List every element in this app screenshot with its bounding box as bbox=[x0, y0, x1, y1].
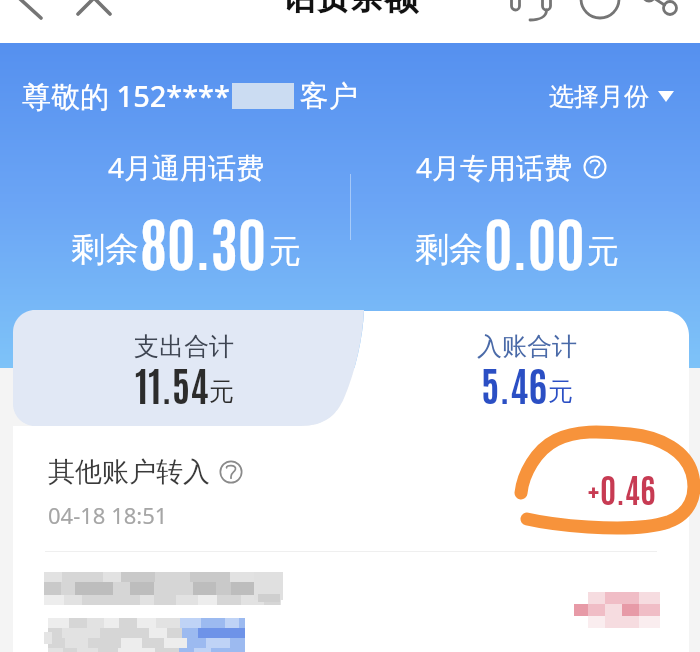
button[interactable]: 选择月份 bbox=[545, 77, 678, 116]
staticText: 尊敬的 152**** bbox=[22, 76, 230, 116]
button[interactable]: Share bbox=[637, 0, 683, 21]
button[interactable]: Help bbox=[583, 155, 607, 179]
staticText: 元 bbox=[209, 376, 234, 407]
staticText: 其他账户转入 bbox=[48, 455, 210, 489]
staticText: 剩余 bbox=[71, 228, 139, 271]
staticText: 元 bbox=[548, 376, 573, 407]
button[interactable] bbox=[365, 311, 689, 426]
staticText: 入账合计 bbox=[477, 331, 577, 362]
staticText: 支出合计 bbox=[134, 331, 234, 362]
staticText: 80.30 bbox=[140, 203, 267, 278]
button[interactable]: Close bbox=[72, 0, 118, 19]
button[interactable]: 其他账户转入 bbox=[13, 437, 689, 547]
staticText: 4月通用话费 bbox=[108, 148, 265, 186]
staticText: 选择月份 bbox=[549, 81, 649, 112]
staticText: 11.54 bbox=[135, 358, 209, 410]
staticText: +0.46 bbox=[587, 467, 656, 510]
staticText: 元 bbox=[269, 231, 301, 271]
staticText: 0.00 bbox=[484, 203, 585, 278]
button[interactable] bbox=[13, 310, 363, 426]
staticText: 剩余 bbox=[415, 228, 483, 271]
button[interactable]: Customer service bbox=[508, 0, 554, 21]
staticText: 客户 bbox=[300, 78, 358, 115]
staticText: 5.46 bbox=[481, 358, 548, 410]
button[interactable]: Account bbox=[577, 0, 623, 20]
button[interactable]: Back bbox=[8, 0, 58, 13]
staticText: 话费余额 bbox=[282, 0, 418, 19]
staticText: 04-18 18:51 bbox=[48, 500, 168, 530]
staticText: 4月专用话费 bbox=[416, 148, 573, 186]
staticText: 元 bbox=[587, 231, 619, 271]
